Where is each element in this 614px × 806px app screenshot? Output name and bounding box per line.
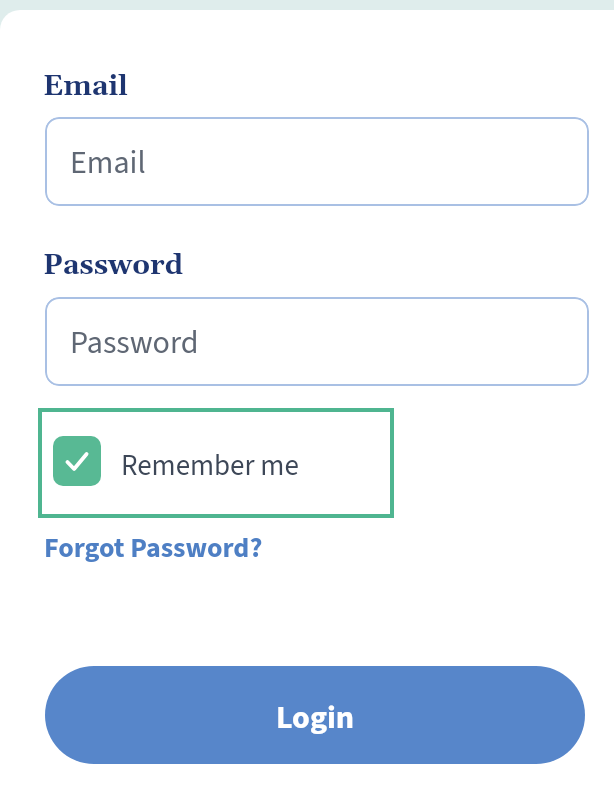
staticText: Password	[43, 248, 184, 284]
staticText: Remember me	[121, 445, 299, 486]
button[interactable]: Password	[45, 297, 589, 386]
button[interactable]: Remember me	[38, 408, 394, 518]
button[interactable]: Forgot Password?	[44, 528, 263, 568]
staticText: Password	[70, 320, 199, 366]
button[interactable]: Email	[45, 117, 589, 206]
staticText: Email	[70, 140, 146, 186]
staticText: Email	[43, 69, 128, 105]
staticText: Login	[276, 695, 355, 741]
button[interactable]: Login	[45, 666, 585, 764]
